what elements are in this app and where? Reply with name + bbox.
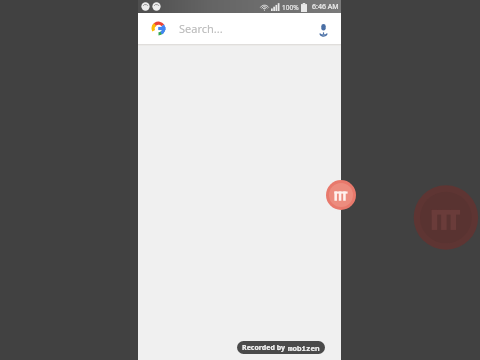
staticText: 100% <box>282 3 299 12</box>
staticText: mobizen <box>288 343 320 353</box>
button[interactable]: Voice search <box>315 21 331 37</box>
staticText: Search... <box>179 21 223 36</box>
button[interactable]: Mobizen recorder <box>326 180 356 210</box>
staticText: Recorded by <box>242 343 285 353</box>
button[interactable]: Search... <box>138 13 341 44</box>
staticText: 6:46 AM <box>312 2 339 12</box>
